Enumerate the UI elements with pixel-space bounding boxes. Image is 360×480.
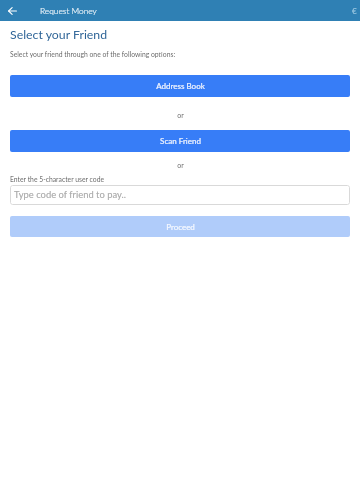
staticText: Select your friend through one of the fo…: [10, 50, 176, 58]
staticText: Request Money: [40, 6, 97, 16]
staticText: Enter the 5-character user code: [10, 175, 105, 183]
staticText: €: [352, 6, 357, 16]
staticText: Address Book: [156, 81, 205, 91]
staticText: or: [177, 111, 184, 119]
button[interactable]: Type code of friend to pay..: [10, 185, 350, 205]
button[interactable]: Proceed: [10, 216, 350, 237]
button[interactable]: Back: [0, 0, 24, 21]
staticText: or: [177, 161, 184, 169]
button[interactable]: Currency: [342, 0, 360, 21]
staticText: Select your Friend: [10, 27, 108, 42]
button[interactable]: Address Book: [10, 75, 350, 97]
staticText: Proceed: [166, 222, 195, 232]
staticText: Type code of friend to pay..: [14, 189, 126, 200]
button[interactable]: Scan Friend: [10, 130, 350, 152]
staticText: Scan Friend: [160, 136, 201, 146]
